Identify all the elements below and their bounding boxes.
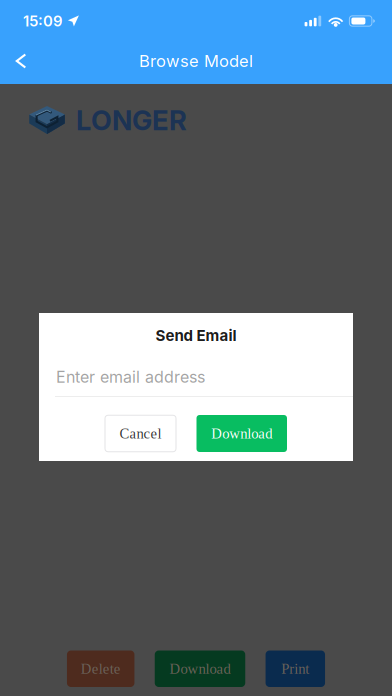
staticText: Print [281,661,309,677]
staticText: 15:09 [23,12,63,30]
button[interactable]: Download [196,415,287,452]
button[interactable]: Download [155,650,245,687]
button[interactable]: Cancel [105,415,176,452]
staticText: Browse Model [139,51,253,71]
staticText: Download [211,425,272,442]
staticText: Enter email address [56,367,205,387]
button[interactable]: Delete [67,650,134,687]
staticText: Send Email [155,326,236,345]
staticText: Cancel [119,425,161,442]
staticText: LONGER [76,104,187,137]
button[interactable]: Back [1,42,41,80]
staticText: Delete [81,661,121,677]
staticText: Download [169,661,230,677]
button[interactable]: Print [265,650,325,687]
